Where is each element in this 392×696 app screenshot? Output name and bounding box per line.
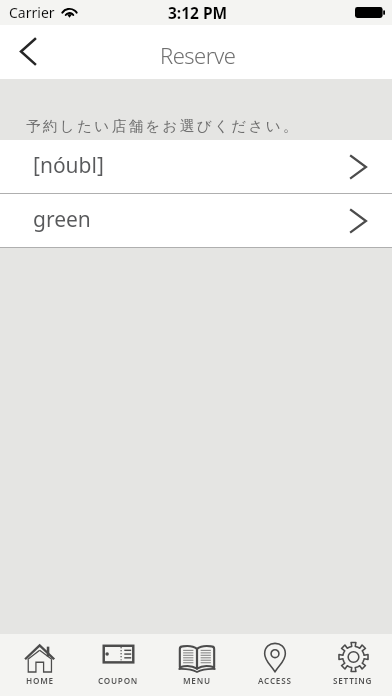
staticText: SETTING — [333, 675, 373, 686]
button[interactable]: [nóubl] — [0, 140, 392, 193]
staticText: HOME — [26, 675, 54, 686]
button[interactable]: MENU — [158, 633, 236, 695]
staticText: 3:12 PM — [168, 2, 228, 23]
staticText: green — [33, 205, 91, 234]
button[interactable]: HOME — [0, 633, 79, 695]
staticText: ACCESS — [258, 675, 292, 686]
staticText: [nóubl] — [33, 151, 104, 180]
staticText: 予約したい店舗をお選びください。 — [26, 117, 300, 135]
button[interactable]: Back — [0, 25, 54, 79]
staticText: MENU — [183, 675, 211, 686]
button[interactable]: ACCESS — [236, 633, 314, 695]
staticText: Carrier — [9, 3, 55, 22]
button[interactable]: green — [0, 194, 392, 247]
button[interactable]: SETTING — [314, 633, 392, 695]
staticText: COUPON — [98, 675, 139, 686]
button[interactable]: COUPON — [79, 633, 158, 695]
staticText: Reserve — [160, 40, 236, 70]
